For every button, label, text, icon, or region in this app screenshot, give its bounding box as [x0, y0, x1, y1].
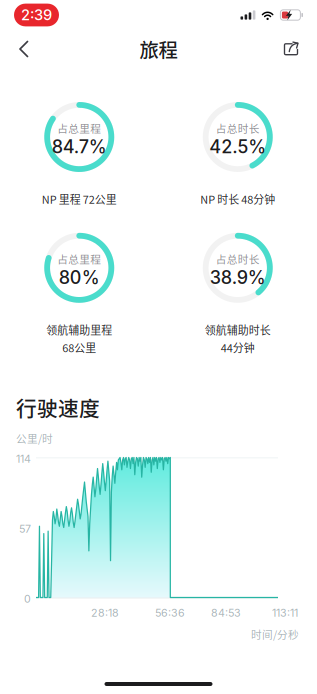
staticText: 114 [16, 452, 31, 465]
staticText: 80% [59, 267, 100, 288]
staticText: 行驶速度 [16, 392, 100, 422]
staticText: NP 里程 72公里 [42, 191, 117, 207]
staticText: 28:18 [91, 606, 119, 619]
staticText: 84:53 [211, 606, 241, 619]
staticText: 42.5% [209, 136, 266, 158]
staticText: 57 [19, 522, 31, 535]
staticText: 占总里程 [57, 251, 101, 267]
staticText: 占总时长 [216, 120, 260, 136]
staticText: 领航辅助里程 [46, 322, 112, 338]
staticText: 占总里程 [57, 120, 101, 136]
staticText: 领航辅助时长 [205, 322, 271, 338]
staticText: 旅程 [139, 35, 177, 63]
staticText: 占总时长 [216, 251, 260, 267]
staticText: 113:11 [272, 606, 298, 619]
staticText: 56:36 [155, 606, 185, 619]
staticText: 时间/分秒 [251, 626, 299, 642]
button[interactable]: Back [12, 32, 36, 66]
button[interactable]: Share [277, 34, 305, 64]
staticText: 44分钟 [221, 340, 255, 355]
staticText: 68公里 [62, 340, 96, 355]
staticText: 2:39 [21, 6, 52, 24]
staticText: 84.7% [52, 136, 107, 158]
staticText: 0 [24, 592, 31, 605]
staticText: 公里/时 [16, 430, 53, 446]
staticText: NP 时长 48分钟 [200, 191, 275, 207]
staticText: 38.9% [210, 267, 266, 288]
